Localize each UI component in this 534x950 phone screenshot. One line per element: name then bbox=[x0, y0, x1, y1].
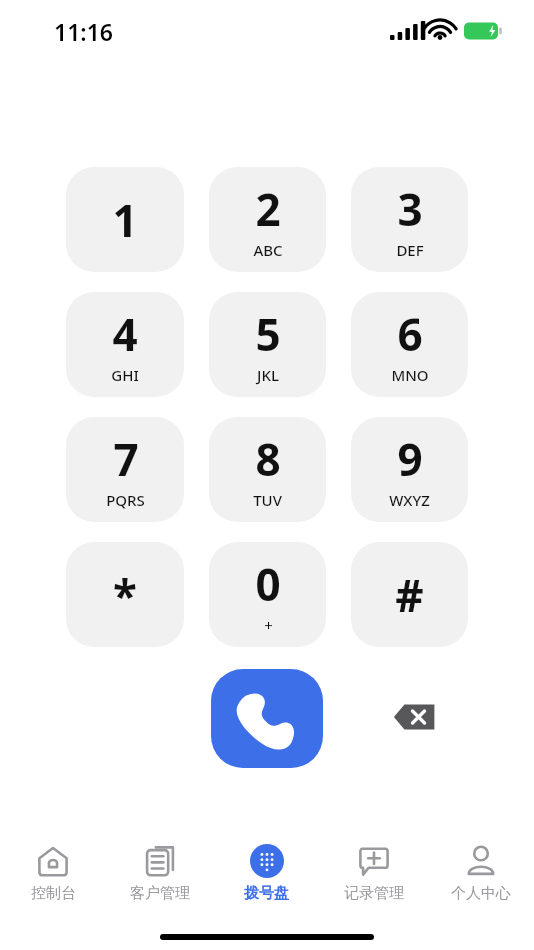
staticText: 3 bbox=[397, 179, 423, 239]
staticText: 6 bbox=[397, 304, 423, 364]
staticText: 4 bbox=[112, 304, 138, 364]
staticText: PQRS bbox=[106, 490, 145, 510]
staticText: 9 bbox=[397, 429, 423, 489]
button[interactable]: # bbox=[351, 542, 468, 647]
staticText: 7 bbox=[113, 429, 139, 489]
button[interactable]: Call bbox=[211, 669, 323, 768]
staticText: JKL bbox=[257, 365, 279, 385]
staticText: 8 bbox=[255, 429, 281, 489]
staticText: 11:16 bbox=[54, 16, 113, 47]
button[interactable]: 4 bbox=[66, 292, 184, 397]
button[interactable]: 0 bbox=[209, 542, 326, 647]
button[interactable]: 控制台 bbox=[0, 834, 106, 903]
staticText: 拨号盘 bbox=[244, 884, 289, 903]
staticText: MNO bbox=[391, 365, 429, 385]
staticText: ABC bbox=[253, 240, 283, 260]
staticText: GHI bbox=[111, 365, 139, 385]
button[interactable]: 客户管理 bbox=[106, 834, 213, 903]
staticText: + bbox=[264, 615, 273, 635]
button[interactable]: 个人中心 bbox=[427, 834, 534, 903]
button[interactable]: 5 bbox=[209, 292, 326, 397]
staticText: DEF bbox=[396, 240, 424, 260]
staticText: 记录管理 bbox=[344, 884, 404, 903]
button[interactable]: 6 bbox=[351, 292, 468, 397]
staticText: 0 bbox=[255, 554, 281, 614]
button[interactable]: 拨号盘 bbox=[213, 834, 320, 903]
button[interactable]: 3 bbox=[351, 167, 468, 272]
staticText: 1 bbox=[112, 190, 138, 250]
staticText: 5 bbox=[255, 304, 281, 364]
button[interactable]: 9 bbox=[351, 417, 468, 522]
button[interactable]: 7 bbox=[66, 417, 184, 522]
button[interactable]: * bbox=[66, 542, 184, 647]
staticText: # bbox=[395, 565, 424, 625]
button[interactable]: 2 bbox=[209, 167, 326, 272]
staticText: 个人中心 bbox=[451, 884, 511, 903]
staticText: 2 bbox=[255, 179, 281, 239]
button[interactable]: 1 bbox=[66, 167, 184, 272]
staticText: 客户管理 bbox=[130, 884, 190, 903]
staticText: 控制台 bbox=[31, 884, 76, 903]
staticText: TUV bbox=[253, 490, 282, 510]
button[interactable]: 8 bbox=[209, 417, 326, 522]
staticText: WXYZ bbox=[389, 490, 430, 510]
button[interactable]: 记录管理 bbox=[320, 834, 427, 903]
button[interactable]: Delete bbox=[385, 693, 445, 741]
staticText: * bbox=[113, 565, 137, 625]
